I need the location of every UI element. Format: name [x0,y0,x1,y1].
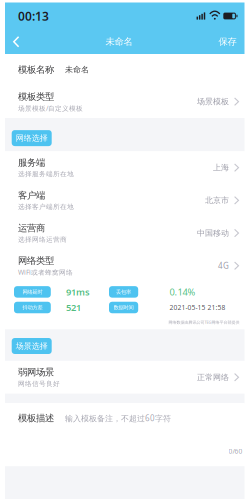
staticText: 中国移动 [197,228,229,238]
staticText: 正常网络 [197,372,229,382]
staticText: 北京市 [205,195,229,205]
button[interactable]: 模板类型 [5,85,244,118]
staticText: 数据时间 [114,304,134,311]
staticText: 输入模板备注，不超过60字符 [65,413,171,423]
staticText: 客户端 [18,190,45,201]
staticText: 场景模板 [197,97,229,106]
staticText: 0.14% [169,286,195,298]
staticText: 选择客户端所在地 [18,203,74,211]
button[interactable]: 弱网场景 [5,361,244,394]
button[interactable]: Back [5,29,35,54]
staticText: 运营商 [18,222,45,234]
staticText: 网络信号良好 [18,380,60,388]
staticText: 521 [66,301,81,314]
staticText: 场景选择 [16,341,48,351]
button[interactable]: 模板名称 [5,54,244,85]
staticText: 选择网络运营商 [18,235,67,244]
staticText: 选择服务端所在地 [18,170,74,178]
staticText: 抖动方差 [22,304,42,311]
staticText: 场景模板/自定义模板 [18,104,83,113]
staticText: 网络延时 [22,289,42,295]
staticText: 4G [218,260,229,271]
staticText: 未命名 [65,65,89,74]
staticText: 网络类型 [18,255,54,266]
staticText: 网络选择 [16,133,48,143]
staticText: 保存 [218,36,236,47]
staticText: 丢包率 [116,289,131,295]
staticText: 网络数据由腾讯公司TEG网络平台部提供 [168,320,239,325]
staticText: WiFi或者蜂窝网络 [18,268,73,277]
staticText: 模板名称 [18,64,54,75]
staticText: 服务端 [18,157,45,168]
button[interactable]: 服务端 [5,151,244,184]
staticText: 模板类型 [18,91,54,102]
staticText: 91ms [66,286,90,298]
staticText: 上海 [213,163,229,172]
staticText: 模板描述 [18,412,54,424]
button[interactable]: 客户端 [5,184,244,217]
staticText: 弱网场景 [18,366,54,378]
button[interactable]: 网络类型 [5,249,244,282]
staticText: 未命名 [105,36,132,47]
staticText: 2021-05-15 21:58 [169,303,225,312]
button[interactable]: 保存 [202,29,244,54]
staticText: 0/60 [228,447,242,456]
button[interactable]: 运营商 [5,217,244,249]
staticText: 00:13 [18,8,49,24]
